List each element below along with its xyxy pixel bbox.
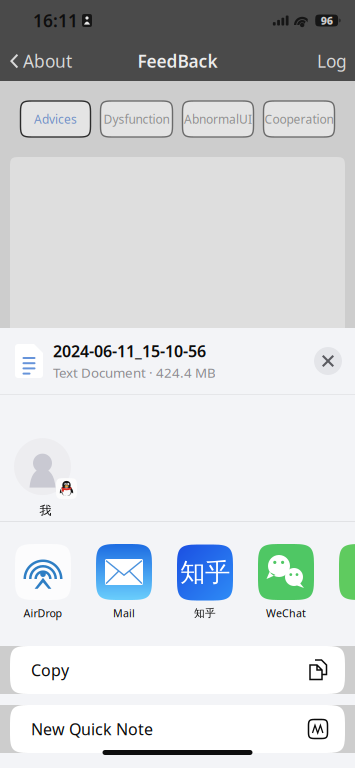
staticText: 我	[39, 503, 51, 518]
staticText: Copy	[31, 659, 69, 681]
staticText: AirDrop	[23, 606, 62, 620]
button[interactable]: 我	[0, 438, 95, 518]
staticText: Mail	[113, 606, 135, 620]
button[interactable]: WeChat	[258, 544, 314, 620]
staticText: 知乎	[194, 606, 216, 620]
button[interactable]: Mail	[96, 544, 152, 620]
staticText: 96	[321, 13, 333, 28]
button[interactable]: AirDrop	[15, 544, 71, 620]
staticText: AbnormalUI	[184, 111, 252, 127]
button[interactable]: About	[0, 41, 80, 81]
button[interactable]: 知乎	[177, 544, 233, 620]
staticText: 知乎	[180, 557, 230, 588]
staticText: Cooperation	[264, 111, 333, 127]
button[interactable]: Dysfunction	[100, 101, 172, 137]
staticText: 2024-06-11_15-10-56	[53, 340, 206, 362]
button[interactable]: Copy	[10, 646, 345, 694]
button[interactable]: Cooperation	[263, 101, 334, 137]
staticText: FeedBack	[137, 49, 217, 72]
button[interactable]: Advices	[20, 101, 90, 137]
staticText: About	[23, 49, 72, 72]
button[interactable]: New Quick Note	[10, 705, 345, 753]
staticText: 16:11	[33, 9, 78, 32]
staticText: New Quick Note	[31, 718, 153, 740]
staticText: Dysfunction	[103, 111, 169, 127]
button[interactable]: Close	[311, 344, 345, 378]
staticText: Log	[317, 49, 347, 72]
button[interactable]: Log	[309, 41, 355, 81]
staticText: Text Document · 424.4 MB	[53, 364, 216, 381]
staticText: Advices	[34, 111, 77, 127]
button[interactable]: AbnormalUI	[182, 101, 253, 137]
staticText: WeChat	[266, 606, 306, 620]
